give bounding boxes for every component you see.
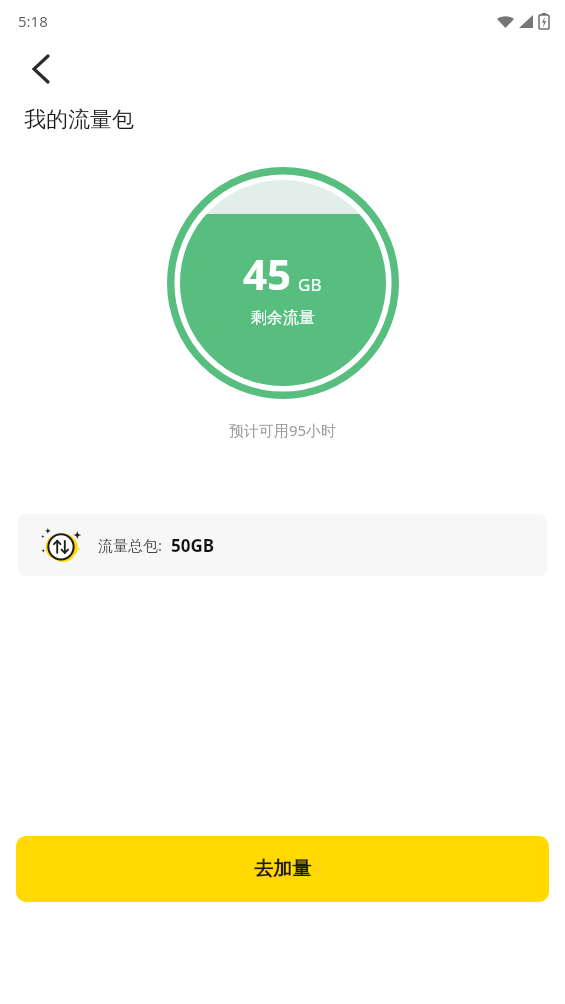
staticText: 50GB <box>171 534 215 557</box>
button[interactable]: 去加量 <box>16 836 549 902</box>
staticText: 去加量 <box>254 857 311 881</box>
staticText: 剩余流量 <box>251 308 315 328</box>
staticText: 我的流量包 <box>24 106 134 134</box>
staticText: 流量总包: <box>98 535 163 555</box>
staticText: 预计可用95小时 <box>0 420 565 440</box>
button[interactable]: Back <box>14 42 68 96</box>
button[interactable]: 流量总包: <box>18 514 547 576</box>
staticText: 45 <box>243 245 292 302</box>
staticText: 5:18 <box>18 11 48 31</box>
staticText: GB <box>298 273 322 296</box>
